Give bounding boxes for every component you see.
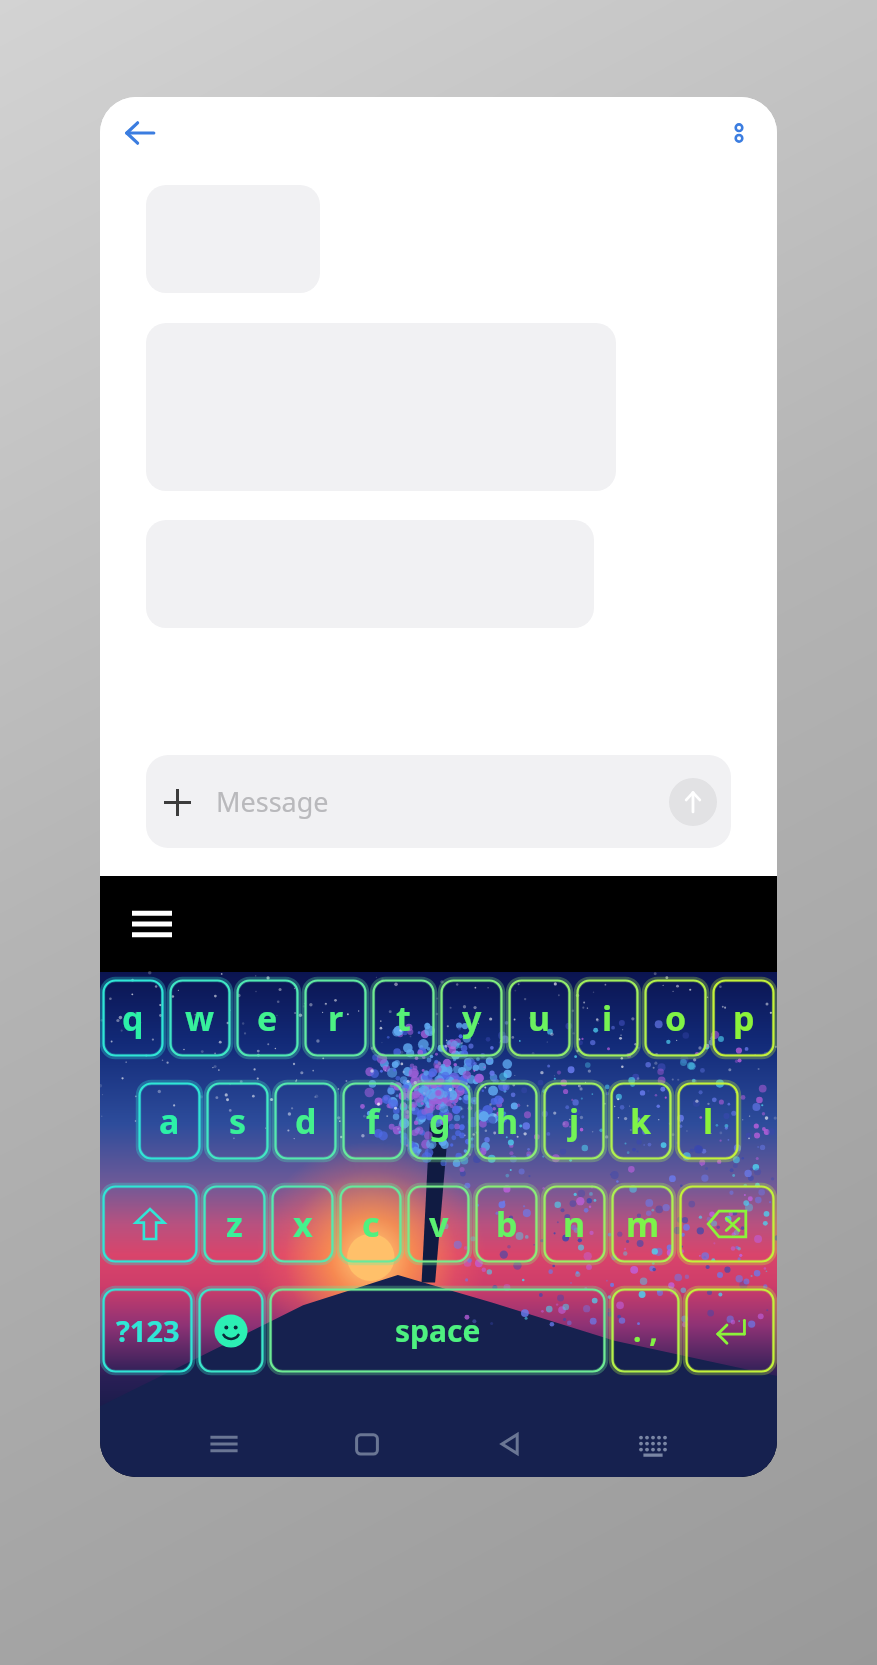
button[interactable]: Back xyxy=(112,105,168,161)
button[interactable]: d xyxy=(274,1082,337,1160)
button[interactable]: o xyxy=(644,979,707,1057)
button[interactable]: Recent apps xyxy=(196,1416,252,1472)
staticText: n xyxy=(563,1201,586,1247)
button[interactable]: h xyxy=(476,1082,538,1160)
staticText: z xyxy=(226,1201,243,1247)
staticText: y xyxy=(462,995,482,1041)
button[interactable]: Add attachment xyxy=(146,755,731,848)
staticText: h xyxy=(496,1098,519,1144)
button[interactable]: v xyxy=(407,1185,470,1263)
button[interactable]: w xyxy=(169,979,231,1057)
button[interactable]: u xyxy=(508,979,571,1057)
button[interactable]: t xyxy=(372,979,435,1057)
staticText: q xyxy=(122,995,144,1041)
staticText: g xyxy=(429,1098,451,1144)
staticText: space xyxy=(395,1310,481,1351)
button[interactable]: Back xyxy=(482,1416,538,1472)
staticText: l xyxy=(703,1098,714,1144)
button[interactable]: q xyxy=(102,979,164,1057)
button[interactable]: space xyxy=(269,1288,606,1373)
staticText: t xyxy=(396,995,411,1041)
staticText: s xyxy=(229,1098,247,1144)
staticText: e xyxy=(257,995,278,1041)
staticText: c xyxy=(362,1201,380,1247)
button[interactable]: Enter xyxy=(685,1288,775,1373)
button[interactable]: Home xyxy=(339,1416,395,1472)
button[interactable]: m xyxy=(611,1185,674,1263)
staticText: . , xyxy=(633,1310,658,1351)
staticText: Message xyxy=(216,783,329,820)
button[interactable]: g xyxy=(409,1082,471,1160)
button[interactable]: k xyxy=(610,1082,672,1160)
button[interactable]: More options xyxy=(713,107,765,159)
button[interactable]: Send xyxy=(669,778,717,826)
button[interactable]: . , xyxy=(611,1288,680,1373)
button[interactable]: Keyboard menu xyxy=(120,892,184,956)
button[interactable]: Hide keyboard xyxy=(625,1416,681,1472)
staticText: m xyxy=(626,1201,660,1247)
staticText: i xyxy=(602,995,613,1041)
button[interactable]: l xyxy=(677,1082,739,1160)
button[interactable]: z xyxy=(203,1185,266,1263)
button[interactable] xyxy=(102,1185,198,1263)
button[interactable]: n xyxy=(543,1185,606,1263)
staticText: f xyxy=(366,1098,380,1144)
staticText: o xyxy=(665,995,687,1041)
button[interactable]: c xyxy=(339,1185,402,1263)
staticText: d xyxy=(295,1098,317,1144)
button[interactable]: r xyxy=(304,979,367,1057)
button[interactable]: x xyxy=(271,1185,334,1263)
button[interactable]: s xyxy=(206,1082,269,1160)
staticText: w xyxy=(185,995,215,1041)
button[interactable]: y xyxy=(440,979,503,1057)
button[interactable]: f xyxy=(342,1082,404,1160)
button[interactable]: i xyxy=(576,979,639,1057)
button[interactable]: a xyxy=(138,1082,201,1160)
button[interactable]: b xyxy=(475,1185,538,1263)
staticText: b xyxy=(496,1201,518,1247)
button[interactable]: Backspace xyxy=(679,1185,775,1263)
button[interactable]: Add attachment xyxy=(146,771,208,833)
button[interactable]: e xyxy=(236,979,299,1057)
staticText: p xyxy=(733,995,755,1041)
staticText: j xyxy=(569,1098,580,1144)
button[interactable]: j xyxy=(543,1082,605,1160)
button[interactable]: p xyxy=(712,979,775,1057)
staticText: r xyxy=(328,995,344,1041)
staticText: k xyxy=(630,1098,652,1144)
staticText: u xyxy=(528,995,551,1041)
button[interactable]: ?123 xyxy=(102,1288,193,1373)
staticText: a xyxy=(159,1098,180,1144)
staticText: x xyxy=(293,1201,313,1247)
button[interactable]: Emoji xyxy=(198,1288,264,1373)
staticText: ?123 xyxy=(116,1311,180,1350)
staticText: v xyxy=(429,1201,449,1247)
